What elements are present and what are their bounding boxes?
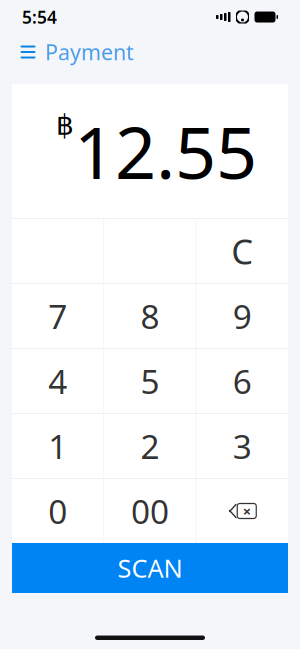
staticText: 1 <box>48 424 67 468</box>
button[interactable]: Payment <box>43 32 134 72</box>
button[interactable]: 6 <box>196 349 288 413</box>
staticText: 0 <box>48 489 67 533</box>
staticText: 00 <box>131 489 169 533</box>
button[interactable]: SCAN <box>12 543 288 593</box>
staticText: × <box>243 501 251 521</box>
button[interactable]: Menu <box>13 37 43 67</box>
staticText: 5 <box>140 359 159 403</box>
staticText: 4 <box>48 359 67 403</box>
staticText: 8 <box>140 294 159 338</box>
button[interactable]: 3 <box>196 414 288 478</box>
button[interactable]: 1 <box>12 414 103 478</box>
staticText: Payment <box>45 38 134 66</box>
button[interactable]: 2 <box>104 414 196 478</box>
staticText: 6 <box>233 359 252 403</box>
staticText: 2 <box>140 424 159 468</box>
staticText: SCAN <box>117 551 182 585</box>
button[interactable]: 5 <box>104 349 196 413</box>
button[interactable]: C <box>196 219 288 283</box>
staticText: 7 <box>48 294 67 338</box>
button[interactable]: 7 <box>12 284 103 348</box>
button[interactable]: 4 <box>12 349 103 413</box>
button[interactable]: 00 <box>104 479 196 543</box>
staticText: 12.55 <box>74 103 257 199</box>
button[interactable]: 0 <box>12 479 103 543</box>
button[interactable]: 8 <box>104 284 196 348</box>
button[interactable]: 9 <box>196 284 288 348</box>
staticText: 3 <box>233 424 252 468</box>
staticText: 5:54 <box>22 5 57 28</box>
staticText: 9 <box>233 294 252 338</box>
staticText: C <box>231 228 253 274</box>
staticText: ฿ <box>56 109 74 141</box>
button[interactable]: Delete <box>196 479 288 543</box>
